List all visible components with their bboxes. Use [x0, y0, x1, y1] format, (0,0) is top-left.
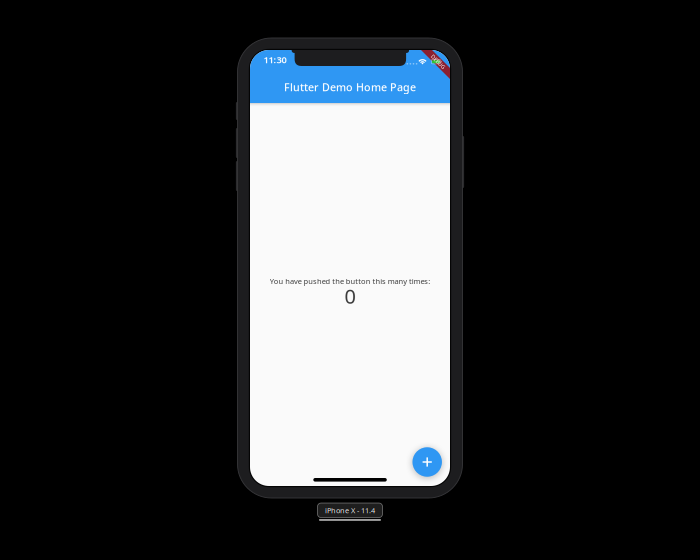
button[interactable]: Increment: [412, 447, 442, 477]
staticText: You have pushed the button this many tim…: [270, 276, 430, 286]
staticText: 11:30: [263, 53, 286, 66]
staticText: iPhone X - 11.4: [325, 505, 375, 515]
staticText: DEBUG: [429, 58, 447, 65]
staticText: 0: [344, 282, 355, 310]
staticText: Flutter Demo Home Page: [284, 80, 416, 94]
